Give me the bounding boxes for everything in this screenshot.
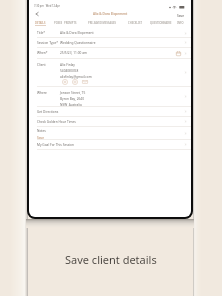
button[interactable]: Session Type* <box>29 38 191 47</box>
staticText: Notes <box>37 129 46 133</box>
staticText: Title* <box>37 31 46 35</box>
staticText: PRE-SAVED MESSAGES <box>88 21 117 24</box>
button[interactable]: Check Golden Hour Times <box>29 117 191 126</box>
staticText: Save client details <box>65 252 157 267</box>
button[interactable]: Message <box>72 79 78 85</box>
button[interactable]: Where <box>29 87 191 106</box>
staticText: 25/5/23, 11:00 am <box>60 51 87 55</box>
button[interactable]: When* <box>29 48 191 58</box>
button[interactable]: Call <box>62 79 68 85</box>
button[interactable]: Get Directions <box>29 107 191 116</box>
staticText: Where <box>37 91 47 95</box>
button[interactable]: Client <box>29 59 191 86</box>
staticText: Save <box>177 14 185 18</box>
button[interactable]: QUESTIONNAIRE <box>150 21 172 24</box>
staticText: NSW, Australia <box>60 103 82 107</box>
button[interactable]: My Goal For This Session <box>29 140 191 149</box>
staticText: 5404080358 <box>60 69 79 73</box>
staticText: Jonson Street, 75 <box>60 91 86 95</box>
button[interactable]: Back <box>32 9 41 18</box>
button[interactable]: Notes <box>29 127 191 139</box>
button[interactable]: Save <box>177 14 185 18</box>
button[interactable]: DETAILS <box>35 21 46 24</box>
staticText: CHECKLIST <box>128 21 142 24</box>
staticText: INFO <box>177 21 184 24</box>
button[interactable]: Email <box>82 79 88 85</box>
staticText: Client <box>37 63 46 67</box>
staticText: 7:30 pm Wed 12 Apr <box>34 4 60 8</box>
staticText: Byron Bay, 2640 <box>60 97 85 101</box>
staticText: alixfinlay@gmail.com <box>60 75 92 79</box>
staticText: Check Golden Hour Times <box>37 120 76 124</box>
staticText: Alix Finlay <box>60 63 75 67</box>
staticText: DETAILS <box>35 21 46 24</box>
button[interactable]: PRE-SAVED MESSAGES <box>88 21 117 24</box>
staticText: When* <box>37 51 48 55</box>
button[interactable]: PROMPTS <box>64 21 77 24</box>
staticText: Session Type* <box>37 41 58 45</box>
button[interactable]: Pick date <box>176 51 181 56</box>
staticText: POSES <box>54 21 63 24</box>
button[interactable]: Title* <box>29 29 191 37</box>
staticText: Alix & Dora Elopement <box>60 31 94 35</box>
staticText: Alix & Dora Elopement <box>93 12 128 16</box>
staticText: Get Directions <box>37 110 59 114</box>
staticText: QUESTIONNAIRE <box>150 21 172 24</box>
staticText: Save <box>37 136 44 140</box>
button[interactable]: POSES <box>54 21 63 24</box>
button[interactable]: INFO <box>177 21 184 24</box>
staticText: My Goal For This Session <box>37 143 75 147</box>
staticText: Wedding Questionnaire <box>60 41 96 45</box>
button[interactable]: CHECKLIST <box>128 21 142 24</box>
staticText: PROMPTS <box>64 21 77 24</box>
